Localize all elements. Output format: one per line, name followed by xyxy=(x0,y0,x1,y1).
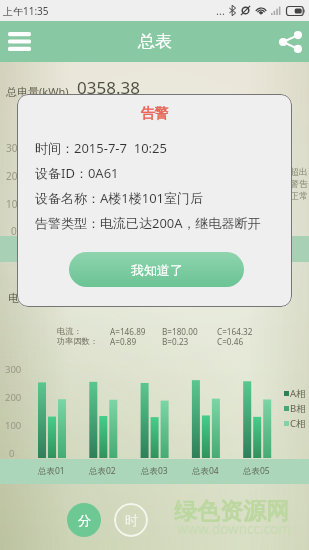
button[interactable]: Share xyxy=(267,21,309,62)
staticText: 告警类型：电流已达200A，继电器断开 xyxy=(35,214,261,232)
staticText: 警告 xyxy=(290,178,308,189)
staticText: 总表03 xyxy=(141,465,168,477)
button[interactable]: Menu xyxy=(0,21,40,62)
button[interactable]: 时 xyxy=(114,503,148,537)
staticText: A相 xyxy=(290,387,306,400)
staticText: 电流： xyxy=(57,326,82,336)
staticText: A=146.89 xyxy=(110,326,146,337)
staticText: 总表 xyxy=(138,31,172,52)
staticText: 设备名称：A楼1楼101室门后 xyxy=(35,189,204,207)
staticText: 总表04 xyxy=(192,465,219,477)
staticText: 告警 xyxy=(17,105,292,123)
staticText: www.downcc.com xyxy=(177,520,291,538)
staticText: 电 xyxy=(8,291,19,305)
staticText: 0 xyxy=(9,447,15,460)
staticText: 正常 xyxy=(290,190,308,201)
staticText: 功率因数： xyxy=(57,336,98,346)
staticText: 0358.38 xyxy=(77,76,140,99)
staticText: 绿色资源网 xyxy=(174,497,289,526)
staticText: B相 xyxy=(290,402,306,415)
staticText: 时间：2015-7-7 10:25 xyxy=(35,139,167,157)
staticText: ... xyxy=(216,3,225,18)
staticText: B=180.00 xyxy=(162,326,198,337)
staticText: 时 xyxy=(125,512,138,528)
staticText: C=0.46 xyxy=(217,336,244,347)
staticText: 总表02 xyxy=(89,465,116,477)
staticText: 上午11:35 xyxy=(3,4,49,18)
staticText: A=0.89 xyxy=(110,336,137,347)
staticText: 300 xyxy=(6,141,24,155)
staticText: 总电量(kWh) xyxy=(6,84,69,99)
staticText: 300 xyxy=(5,363,22,376)
staticText: 0 xyxy=(11,224,17,238)
staticText: C=164.32 xyxy=(217,326,253,337)
staticText: C相 xyxy=(290,417,306,430)
staticText: 超出 xyxy=(290,166,308,177)
staticText: 我知道了 xyxy=(131,262,183,278)
staticText: B=0.23 xyxy=(162,336,189,347)
staticText: 总表05 xyxy=(243,465,270,477)
staticText: 100 xyxy=(5,419,22,432)
staticText: 100 xyxy=(6,197,24,211)
button[interactable]: 我知道了 xyxy=(69,252,244,287)
button[interactable]: 分 xyxy=(67,503,101,537)
staticText: 分 xyxy=(78,512,91,528)
staticText: 设备ID：0A61 xyxy=(35,164,119,182)
staticText: 200 xyxy=(5,391,22,404)
staticText: 总表01 xyxy=(38,465,65,477)
staticText: 200 xyxy=(6,169,24,183)
